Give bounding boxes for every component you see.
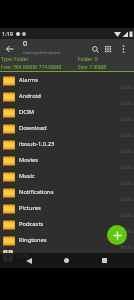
- staticText: 2021-02-10: [120, 134, 134, 138]
- staticText: 2021-02-10: [120, 102, 134, 106]
- button[interactable]: Download: [0, 120, 134, 136]
- staticText: Pictures: [19, 204, 41, 212]
- button[interactable]: Music: [0, 168, 134, 184]
- staticText: Type: Folder: [1, 56, 29, 63]
- staticText: 2021-02-10: [120, 166, 134, 170]
- button[interactable]: More options: [117, 43, 129, 55]
- button[interactable]: Movies: [0, 152, 134, 168]
- staticText: 2021-02-10: [120, 230, 134, 234]
- button[interactable]: Grid view: [101, 42, 115, 56]
- button[interactable]: Podcasts: [0, 216, 134, 232]
- button[interactable]: Alarms: [0, 72, 134, 88]
- button[interactable]: Recents: [98, 254, 111, 267]
- button[interactable]: Android: [0, 88, 134, 104]
- staticText: /storage/emulated: [23, 50, 60, 56]
- staticText: itsuub-1.0.23: [19, 140, 55, 148]
- staticText: Android: [19, 92, 41, 100]
- staticText: DCIM: [19, 108, 35, 116]
- button[interactable]: 0.7z: [0, 248, 134, 264]
- staticText: Folder: 0: [78, 56, 98, 63]
- staticText: 0.7z: [17, 252, 28, 260]
- button[interactable]: DCIM: [0, 104, 134, 120]
- staticText: 2021-02-10: [120, 214, 134, 218]
- staticText: Download: [19, 124, 47, 132]
- staticText: 2021-02-10: [120, 246, 134, 250]
- staticText: 2021-02-10: [120, 198, 134, 202]
- button[interactable]: Pictures: [0, 200, 134, 216]
- staticText: Notifications: [19, 188, 54, 196]
- button[interactable]: Notifications: [0, 184, 134, 200]
- staticText: Podcasts: [19, 220, 44, 228]
- button[interactable]: Add: [107, 225, 127, 245]
- staticText: 2021-02-10: [120, 118, 134, 122]
- staticText: Ringtones: [19, 236, 47, 244]
- button[interactable]: Search: [88, 42, 102, 56]
- staticText: 2021-02-10: [120, 182, 134, 186]
- button[interactable]: Back: [22, 254, 36, 268]
- staticText: 2021-02-10: [120, 150, 134, 154]
- staticText: 0: [23, 39, 28, 49]
- staticText: Alarms: [19, 76, 39, 84]
- button[interactable]: Back: [3, 42, 17, 56]
- staticText: Free: 584.06MB/ 774.08MB: [1, 64, 62, 71]
- button[interactable]: itsuub-1.0.23: [0, 136, 134, 152]
- staticText: Music: [19, 172, 35, 180]
- staticText: 1:19: [2, 30, 13, 37]
- button[interactable]: Ringtones: [0, 232, 134, 248]
- button[interactable]: Home: [60, 254, 73, 267]
- staticText: 2021-02-10: [120, 86, 134, 90]
- staticText: Size: 7.90MB: [78, 64, 107, 71]
- staticText: Movies: [19, 156, 39, 164]
